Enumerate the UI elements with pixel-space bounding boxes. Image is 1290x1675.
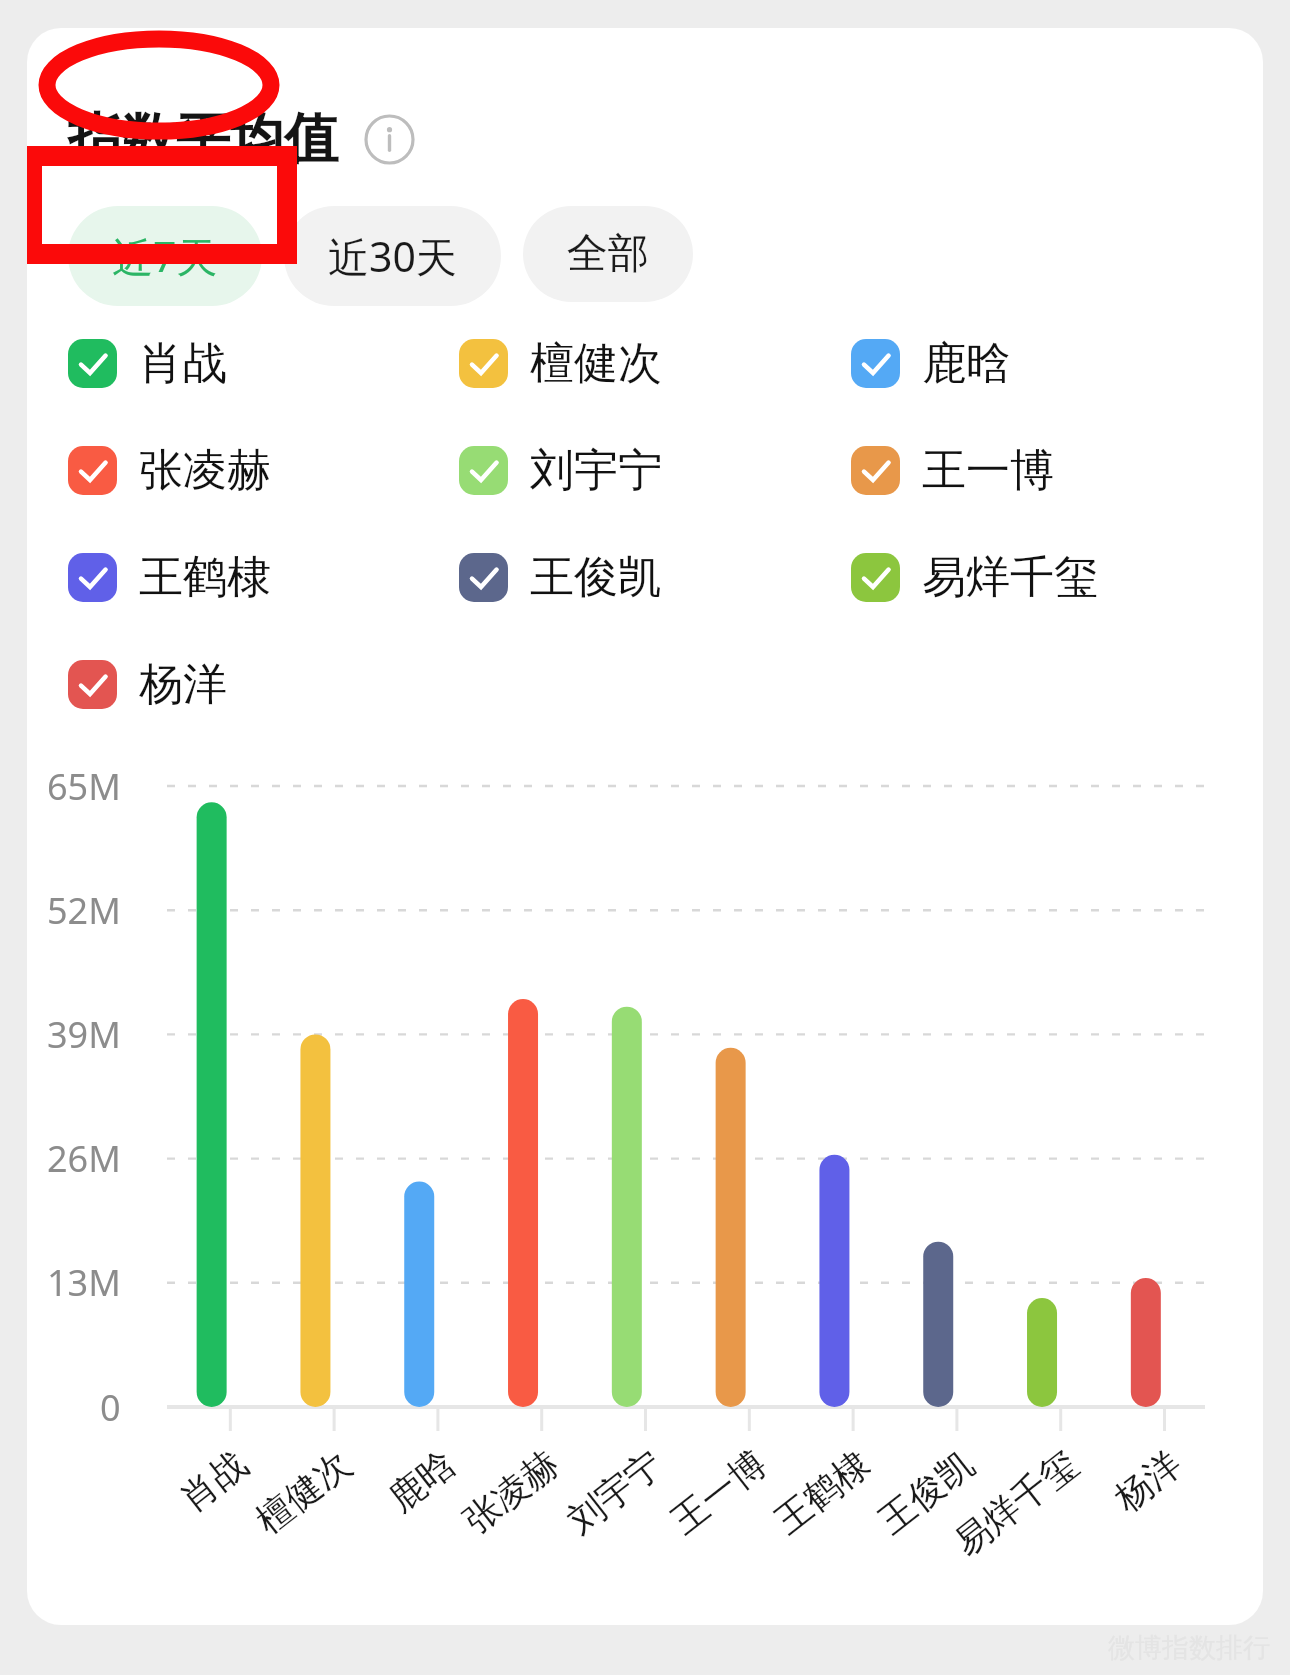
button[interactable]: 近30天 <box>284 206 501 306</box>
staticText: 近7天 <box>112 228 218 284</box>
staticText: 杨洋 <box>139 657 227 712</box>
button[interactable]: 肖战 <box>68 336 227 391</box>
button[interactable]: 近7天 <box>68 206 262 306</box>
button[interactable]: 张凌赫 <box>68 443 271 498</box>
staticText: 檀健次 <box>530 336 662 391</box>
button[interactable]: 鹿晗 <box>851 336 1010 391</box>
staticText: 近30天 <box>328 228 457 284</box>
button[interactable]: Info <box>364 114 415 165</box>
staticText: 全部 <box>567 228 649 280</box>
button[interactable]: 全部 <box>523 206 693 302</box>
staticText: 张凌赫 <box>139 443 271 498</box>
button[interactable]: 易烊千玺 <box>851 550 1098 605</box>
staticText: 肖战 <box>139 336 227 391</box>
button[interactable]: 王鹤棣 <box>68 550 271 605</box>
staticText: 王鹤棣 <box>139 550 271 605</box>
staticText: 易烊千玺 <box>922 550 1098 605</box>
staticText: 鹿晗 <box>922 336 1010 391</box>
button[interactable]: 王一博 <box>851 443 1054 498</box>
staticText: 刘宇宁 <box>530 443 662 498</box>
button[interactable]: 王俊凯 <box>459 550 662 605</box>
button[interactable]: 檀健次 <box>459 336 662 391</box>
staticText: 指数平均值 <box>68 105 338 173</box>
button[interactable]: 刘宇宁 <box>459 443 662 498</box>
button[interactable]: 杨洋 <box>68 657 227 712</box>
staticText: 微博指数排行 <box>1108 1631 1270 1665</box>
staticText: 王俊凯 <box>530 550 662 605</box>
staticText: 王一博 <box>922 443 1054 498</box>
